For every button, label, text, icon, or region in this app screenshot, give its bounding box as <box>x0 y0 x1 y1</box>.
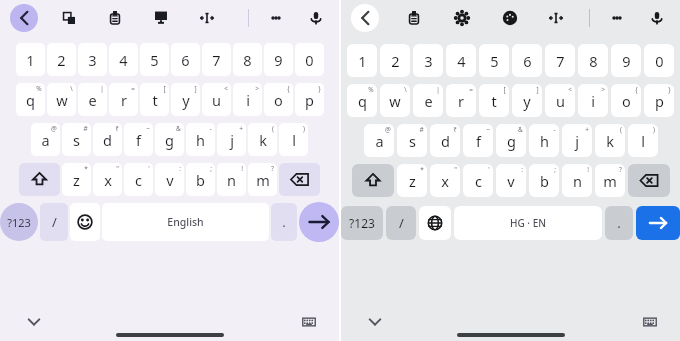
button[interactable]: l <box>279 123 308 156</box>
button[interactable]: o <box>264 83 293 116</box>
button[interactable]: . <box>605 206 633 240</box>
button[interactable]: x <box>430 164 460 197</box>
button[interactable]: a <box>31 123 60 156</box>
button[interactable]: 4 <box>109 43 138 76</box>
button[interactable]: 7 <box>202 43 231 76</box>
button[interactable]: u <box>202 83 231 116</box>
button[interactable]: Shift <box>352 164 394 197</box>
button[interactable]: e <box>413 84 443 117</box>
button[interactable]: 0 <box>295 43 324 76</box>
button[interactable]: q <box>16 83 45 116</box>
button[interactable]: v <box>496 164 526 197</box>
button[interactable]: Hide keyboard <box>363 310 387 334</box>
button[interactable]: t <box>140 83 169 116</box>
button[interactable]: 6 <box>512 44 542 77</box>
button[interactable]: r <box>446 84 476 117</box>
button[interactable]: 3 <box>413 44 443 77</box>
button[interactable]: t <box>479 84 509 117</box>
button[interactable]: m <box>595 164 625 197</box>
button[interactable]: l <box>628 124 658 157</box>
button[interactable]: Emoji <box>70 203 100 241</box>
button[interactable]: Back <box>351 4 379 32</box>
button[interactable]: Voice input <box>644 5 670 31</box>
button[interactable]: English <box>102 203 269 241</box>
button[interactable]: 4 <box>446 44 476 77</box>
button[interactable]: ?123 <box>0 203 38 241</box>
button[interactable]: u <box>545 84 575 117</box>
button[interactable]: v <box>155 163 184 196</box>
button[interactable]: b <box>186 163 215 196</box>
button[interactable]: 1 <box>16 43 45 76</box>
button[interactable]: Backspace <box>279 163 320 196</box>
button[interactable]: y <box>171 83 200 116</box>
button[interactable]: p <box>644 84 674 117</box>
button[interactable]: 3 <box>78 43 107 76</box>
button[interactable]: Enter <box>299 202 339 242</box>
button[interactable]: 8 <box>578 44 608 77</box>
button[interactable]: Backspace <box>628 164 670 197</box>
button[interactable]: k <box>595 124 625 157</box>
button[interactable]: Text editing <box>543 5 569 31</box>
button[interactable]: 5 <box>140 43 169 76</box>
button[interactable]: / <box>386 206 416 240</box>
button[interactable]: More options <box>604 5 630 31</box>
button[interactable]: ?123 <box>341 206 383 240</box>
button[interactable]: b <box>529 164 559 197</box>
button[interactable]: i <box>578 84 608 117</box>
button[interactable]: Hide keyboard <box>22 310 46 334</box>
button[interactable]: s <box>397 124 427 157</box>
button[interactable]: Settings <box>449 5 475 31</box>
button[interactable]: g <box>155 123 184 156</box>
button[interactable]: Back <box>10 4 38 32</box>
button[interactable]: Change language <box>419 206 451 240</box>
button[interactable]: n <box>562 164 592 197</box>
button[interactable]: y <box>512 84 542 117</box>
button[interactable]: x <box>93 163 122 196</box>
button[interactable]: 1 <box>347 44 377 77</box>
button[interactable]: p <box>295 83 324 116</box>
button[interactable]: h <box>529 124 559 157</box>
button[interactable]: / <box>40 203 68 241</box>
button[interactable]: o <box>611 84 641 117</box>
button[interactable]: i <box>233 83 262 116</box>
button[interactable]: Clipboard <box>401 5 427 31</box>
button[interactable]: g <box>496 124 526 157</box>
button[interactable]: d <box>93 123 122 156</box>
button[interactable]: HG · EN <box>454 206 602 240</box>
button[interactable]: . <box>271 203 297 241</box>
button[interactable]: c <box>124 163 153 196</box>
button[interactable]: n <box>217 163 246 196</box>
button[interactable]: 6 <box>171 43 200 76</box>
button[interactable]: Theme <box>497 5 523 31</box>
button[interactable]: Keyboard modes <box>148 5 174 31</box>
button[interactable]: z <box>397 164 427 197</box>
button[interactable]: 2 <box>47 43 76 76</box>
button[interactable]: Shift <box>19 163 60 196</box>
button[interactable]: 9 <box>264 43 293 76</box>
button[interactable]: Enter <box>636 206 680 240</box>
button[interactable]: m <box>248 163 277 196</box>
button[interactable]: w <box>380 84 410 117</box>
button[interactable]: 5 <box>479 44 509 77</box>
button[interactable]: f <box>124 123 153 156</box>
button[interactable]: d <box>430 124 460 157</box>
button[interactable]: h <box>186 123 215 156</box>
button[interactable]: 0 <box>644 44 674 77</box>
button[interactable]: Translate <box>56 5 82 31</box>
button[interactable]: Clipboard <box>102 5 128 31</box>
button[interactable]: Text editing <box>194 5 220 31</box>
button[interactable]: e <box>78 83 107 116</box>
button[interactable]: r <box>109 83 138 116</box>
button[interactable]: a <box>364 124 394 157</box>
button[interactable]: 2 <box>380 44 410 77</box>
button[interactable]: j <box>217 123 246 156</box>
button[interactable]: z <box>62 163 91 196</box>
button[interactable]: More options <box>263 5 289 31</box>
button[interactable]: Switch keyboard <box>297 310 321 334</box>
button[interactable]: s <box>62 123 91 156</box>
button[interactable]: j <box>562 124 592 157</box>
button[interactable]: f <box>463 124 493 157</box>
button[interactable]: c <box>463 164 493 197</box>
button[interactable]: 7 <box>545 44 575 77</box>
button[interactable]: k <box>248 123 277 156</box>
